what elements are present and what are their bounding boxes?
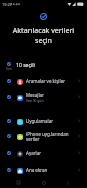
button[interactable]: Home <box>38 177 49 188</box>
staticText: Mesajlar <box>26 92 45 98</box>
staticText: Son 30 gün <box>26 98 44 102</box>
staticText: Aktarılacak verileri seçin <box>7 25 80 45</box>
staticText: 19:27 <box>2 2 12 7</box>
staticText: Ayarlar <box>26 150 42 156</box>
button[interactable]: Uygulamalar <box>0 113 87 129</box>
button[interactable]: Ayarlar <box>0 145 87 161</box>
staticText: Aramalar ve kişiler <box>26 78 66 84</box>
button[interactable]: Mesajlar <box>0 89 87 105</box>
button[interactable]: Ana ekran <box>0 162 87 178</box>
staticText: Uygulamalar <box>26 118 54 124</box>
button[interactable]: Recents <box>13 177 24 188</box>
staticText: 10 seçili <box>16 62 35 69</box>
staticText: Ana ekran <box>26 167 48 173</box>
button[interactable]: Tümü <box>0 59 87 72</box>
staticText: iPhone uyg.larından veriler <box>26 131 69 142</box>
button[interactable]: Aramalar ve kişiler <box>0 73 87 89</box>
staticText: Tümü <box>6 67 12 72</box>
button[interactable]: iPhone uyg.larından veriler <box>0 128 87 144</box>
button[interactable]: Back <box>62 177 73 188</box>
staticText: 82 <box>78 3 81 6</box>
